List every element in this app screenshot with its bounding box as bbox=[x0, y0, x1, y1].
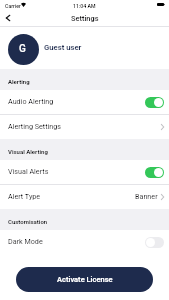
staticText: Dark Mode bbox=[8, 237, 43, 245]
staticText: Audio Alerting bbox=[8, 97, 54, 105]
staticText: Carrier bbox=[5, 3, 21, 9]
button[interactable]: Toggle off bbox=[145, 237, 164, 248]
staticText: Activate License bbox=[57, 275, 113, 284]
staticText: Banner bbox=[135, 192, 158, 200]
staticText: Settings bbox=[71, 14, 99, 23]
staticText: Guest user bbox=[44, 43, 82, 52]
button[interactable]: Activate License bbox=[16, 267, 153, 292]
staticText: Customisation bbox=[8, 218, 48, 225]
button[interactable]: Toggle on bbox=[145, 97, 164, 108]
button[interactable]: Alert Type bbox=[0, 185, 169, 209]
staticText: Alert Type bbox=[8, 192, 41, 200]
staticText: Alerting Settings bbox=[8, 122, 61, 130]
staticText: Visual Alerting bbox=[8, 148, 48, 155]
button[interactable]: Back bbox=[0, 10, 15, 25]
staticText: Visual Alerts bbox=[8, 167, 49, 175]
button[interactable]: Toggle on bbox=[145, 167, 164, 178]
staticText: 11:04 AM bbox=[73, 3, 96, 9]
button[interactable]: Alerting Settings bbox=[0, 115, 169, 139]
staticText: Alerting bbox=[8, 78, 30, 85]
staticText: G bbox=[19, 43, 26, 55]
button[interactable]: Visual Alerts bbox=[0, 160, 169, 184]
button[interactable]: Dark Mode bbox=[0, 230, 169, 254]
button[interactable]: Audio Alerting bbox=[0, 90, 169, 114]
